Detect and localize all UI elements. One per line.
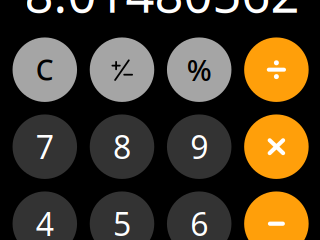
button[interactable]: Multiply [244, 114, 309, 179]
button[interactable]: 8 [90, 114, 154, 179]
staticText: 6 [190, 202, 208, 240]
staticText: 8.01480562 [24, 0, 299, 27]
button[interactable]: 9 [167, 114, 231, 179]
button[interactable]: Divide [244, 37, 309, 102]
staticText: 7 [36, 125, 54, 168]
staticText: C [36, 51, 54, 88]
button[interactable]: C [12, 37, 77, 102]
button[interactable]: % [167, 37, 231, 102]
staticText: 8 [113, 125, 131, 168]
staticText: % [187, 50, 212, 89]
button[interactable]: 4 [12, 191, 77, 240]
staticText: 4 [36, 202, 54, 240]
staticText: 9 [190, 125, 208, 168]
button[interactable]: Plus minus [90, 37, 154, 102]
button[interactable]: 5 [90, 191, 154, 240]
button[interactable]: 6 [167, 191, 231, 240]
staticText: 5 [113, 202, 131, 240]
button[interactable]: 7 [12, 114, 77, 179]
button[interactable]: Subtract [244, 191, 309, 240]
